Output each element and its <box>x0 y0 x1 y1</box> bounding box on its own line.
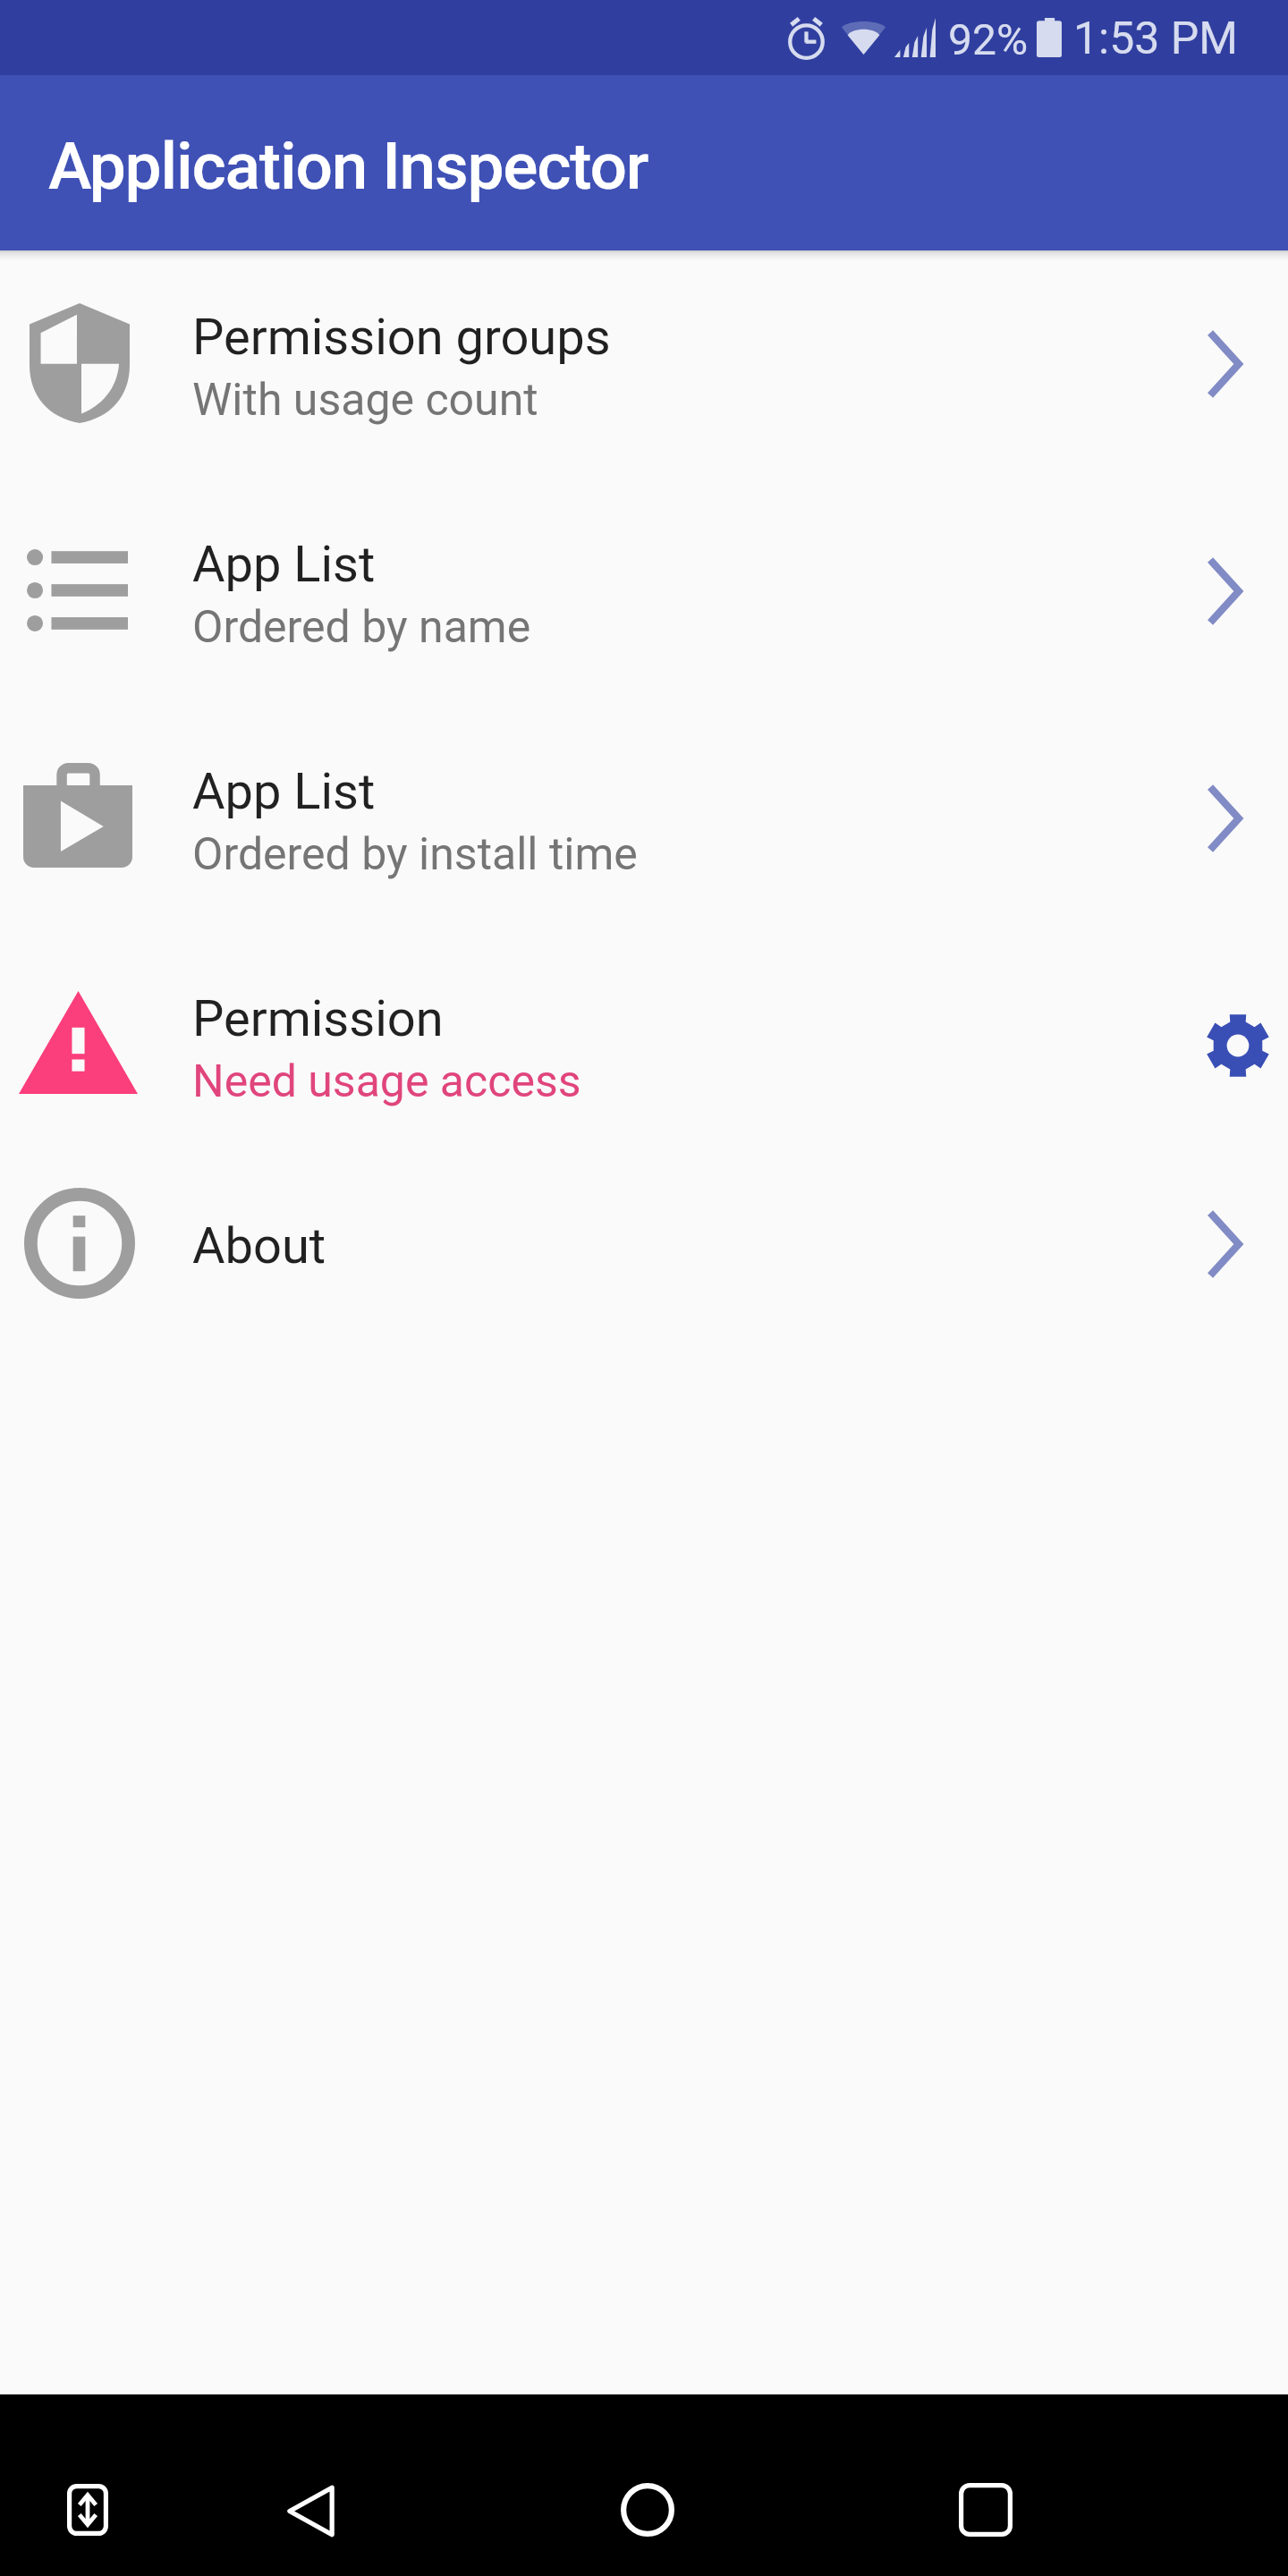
staticText: Permission <box>192 989 444 1048</box>
button[interactable]: Hide navigation bar <box>7 2443 168 2576</box>
staticText: Application Inspector <box>48 128 648 205</box>
button[interactable]: Recent apps <box>905 2443 1066 2576</box>
staticText: 92% <box>948 14 1029 64</box>
button[interactable]: App List, ordered by install time <box>0 703 1288 929</box>
staticText: About <box>192 1216 326 1275</box>
staticText: With usage count <box>192 374 538 427</box>
staticText: 1:53 PM <box>1073 13 1239 65</box>
button[interactable]: Open permission groups <box>1166 284 1283 445</box>
button[interactable]: Home <box>567 2443 728 2576</box>
button[interactable]: Back <box>230 2444 391 2576</box>
button[interactable]: App List, ordered by name <box>0 476 1288 702</box>
staticText: App List <box>192 762 376 821</box>
staticText: Ordered by name <box>192 601 531 654</box>
button[interactable]: Settings <box>1167 965 1288 1126</box>
staticText: Need usage access <box>192 1055 581 1108</box>
button[interactable]: Permission groups, with usage count <box>0 250 1288 476</box>
staticText: App List <box>192 535 376 594</box>
staticText: Ordered by install time <box>192 828 638 881</box>
button[interactable]: Open app list ordered by install time <box>1166 738 1283 899</box>
button[interactable]: About <box>0 1156 1288 1328</box>
staticText: Permission groups <box>192 308 611 367</box>
button[interactable]: Permission, need usage access <box>0 929 1288 1156</box>
button[interactable]: Open about <box>1166 1164 1283 1325</box>
button[interactable]: Open app list ordered by name <box>1166 511 1283 672</box>
